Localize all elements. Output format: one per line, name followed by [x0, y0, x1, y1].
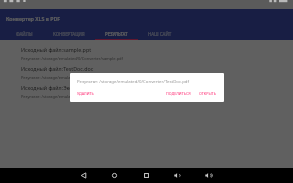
staticText: ПОДЕЛИТЬСЯ — [166, 91, 191, 96]
button[interactable]: РЕЗУЛЬТАТ — [95, 28, 138, 40]
button[interactable]: УДАЛИТЬ — [73, 89, 98, 98]
staticText: ФАЙЛЫ — [16, 31, 33, 37]
button[interactable]: Volume up — [202, 169, 215, 182]
staticText: Результат: /storage/emulated/0/Converter… — [21, 75, 125, 80]
button[interactable]: НАШ САЙТ — [138, 28, 182, 40]
button[interactable]: Исходный файл:TestDoc.doc — [0, 59, 293, 78]
button[interactable]: ФАЙЛЫ — [6, 28, 43, 40]
button[interactable]: Исходный файл:sample.ppt — [0, 40, 293, 59]
staticText: Результат: /storage/emulated/0/Converter… — [21, 94, 123, 99]
staticText: НАШ САЙТ — [148, 31, 172, 37]
staticText: РЕЗУЛЬТАТ — [105, 31, 128, 37]
staticText: УДАЛИТЬ — [77, 91, 94, 96]
staticText: Исходный файл:sample.ppt — [21, 46, 92, 53]
staticText: Исходный файл:Эксель.xls — [21, 84, 89, 91]
staticText: КОНВЕРТАЦИЯ — [53, 31, 85, 37]
button[interactable]: ОТКРЫТЬ — [195, 89, 220, 98]
staticText: Исходный файл:TestDoc.doc — [21, 65, 94, 72]
button[interactable]: Home — [108, 169, 121, 182]
staticText: Конвертер XLS в PDF — [6, 15, 61, 22]
staticText: Результат: /storage/emulated/0/Converter… — [21, 56, 123, 61]
staticText: Результат: /storage/emulated/0/Converter… — [77, 78, 189, 84]
button[interactable]: Back — [77, 169, 90, 182]
button[interactable]: КОНВЕРТАЦИЯ — [43, 28, 95, 40]
button[interactable]: Recent apps — [140, 169, 153, 182]
button[interactable]: Volume down — [171, 169, 184, 182]
staticText: ОТКРЫТЬ — [199, 91, 216, 96]
button[interactable]: Исходный файл:Эксель.xls — [0, 78, 293, 97]
button[interactable]: ПОДЕЛИТЬСЯ — [162, 89, 195, 98]
